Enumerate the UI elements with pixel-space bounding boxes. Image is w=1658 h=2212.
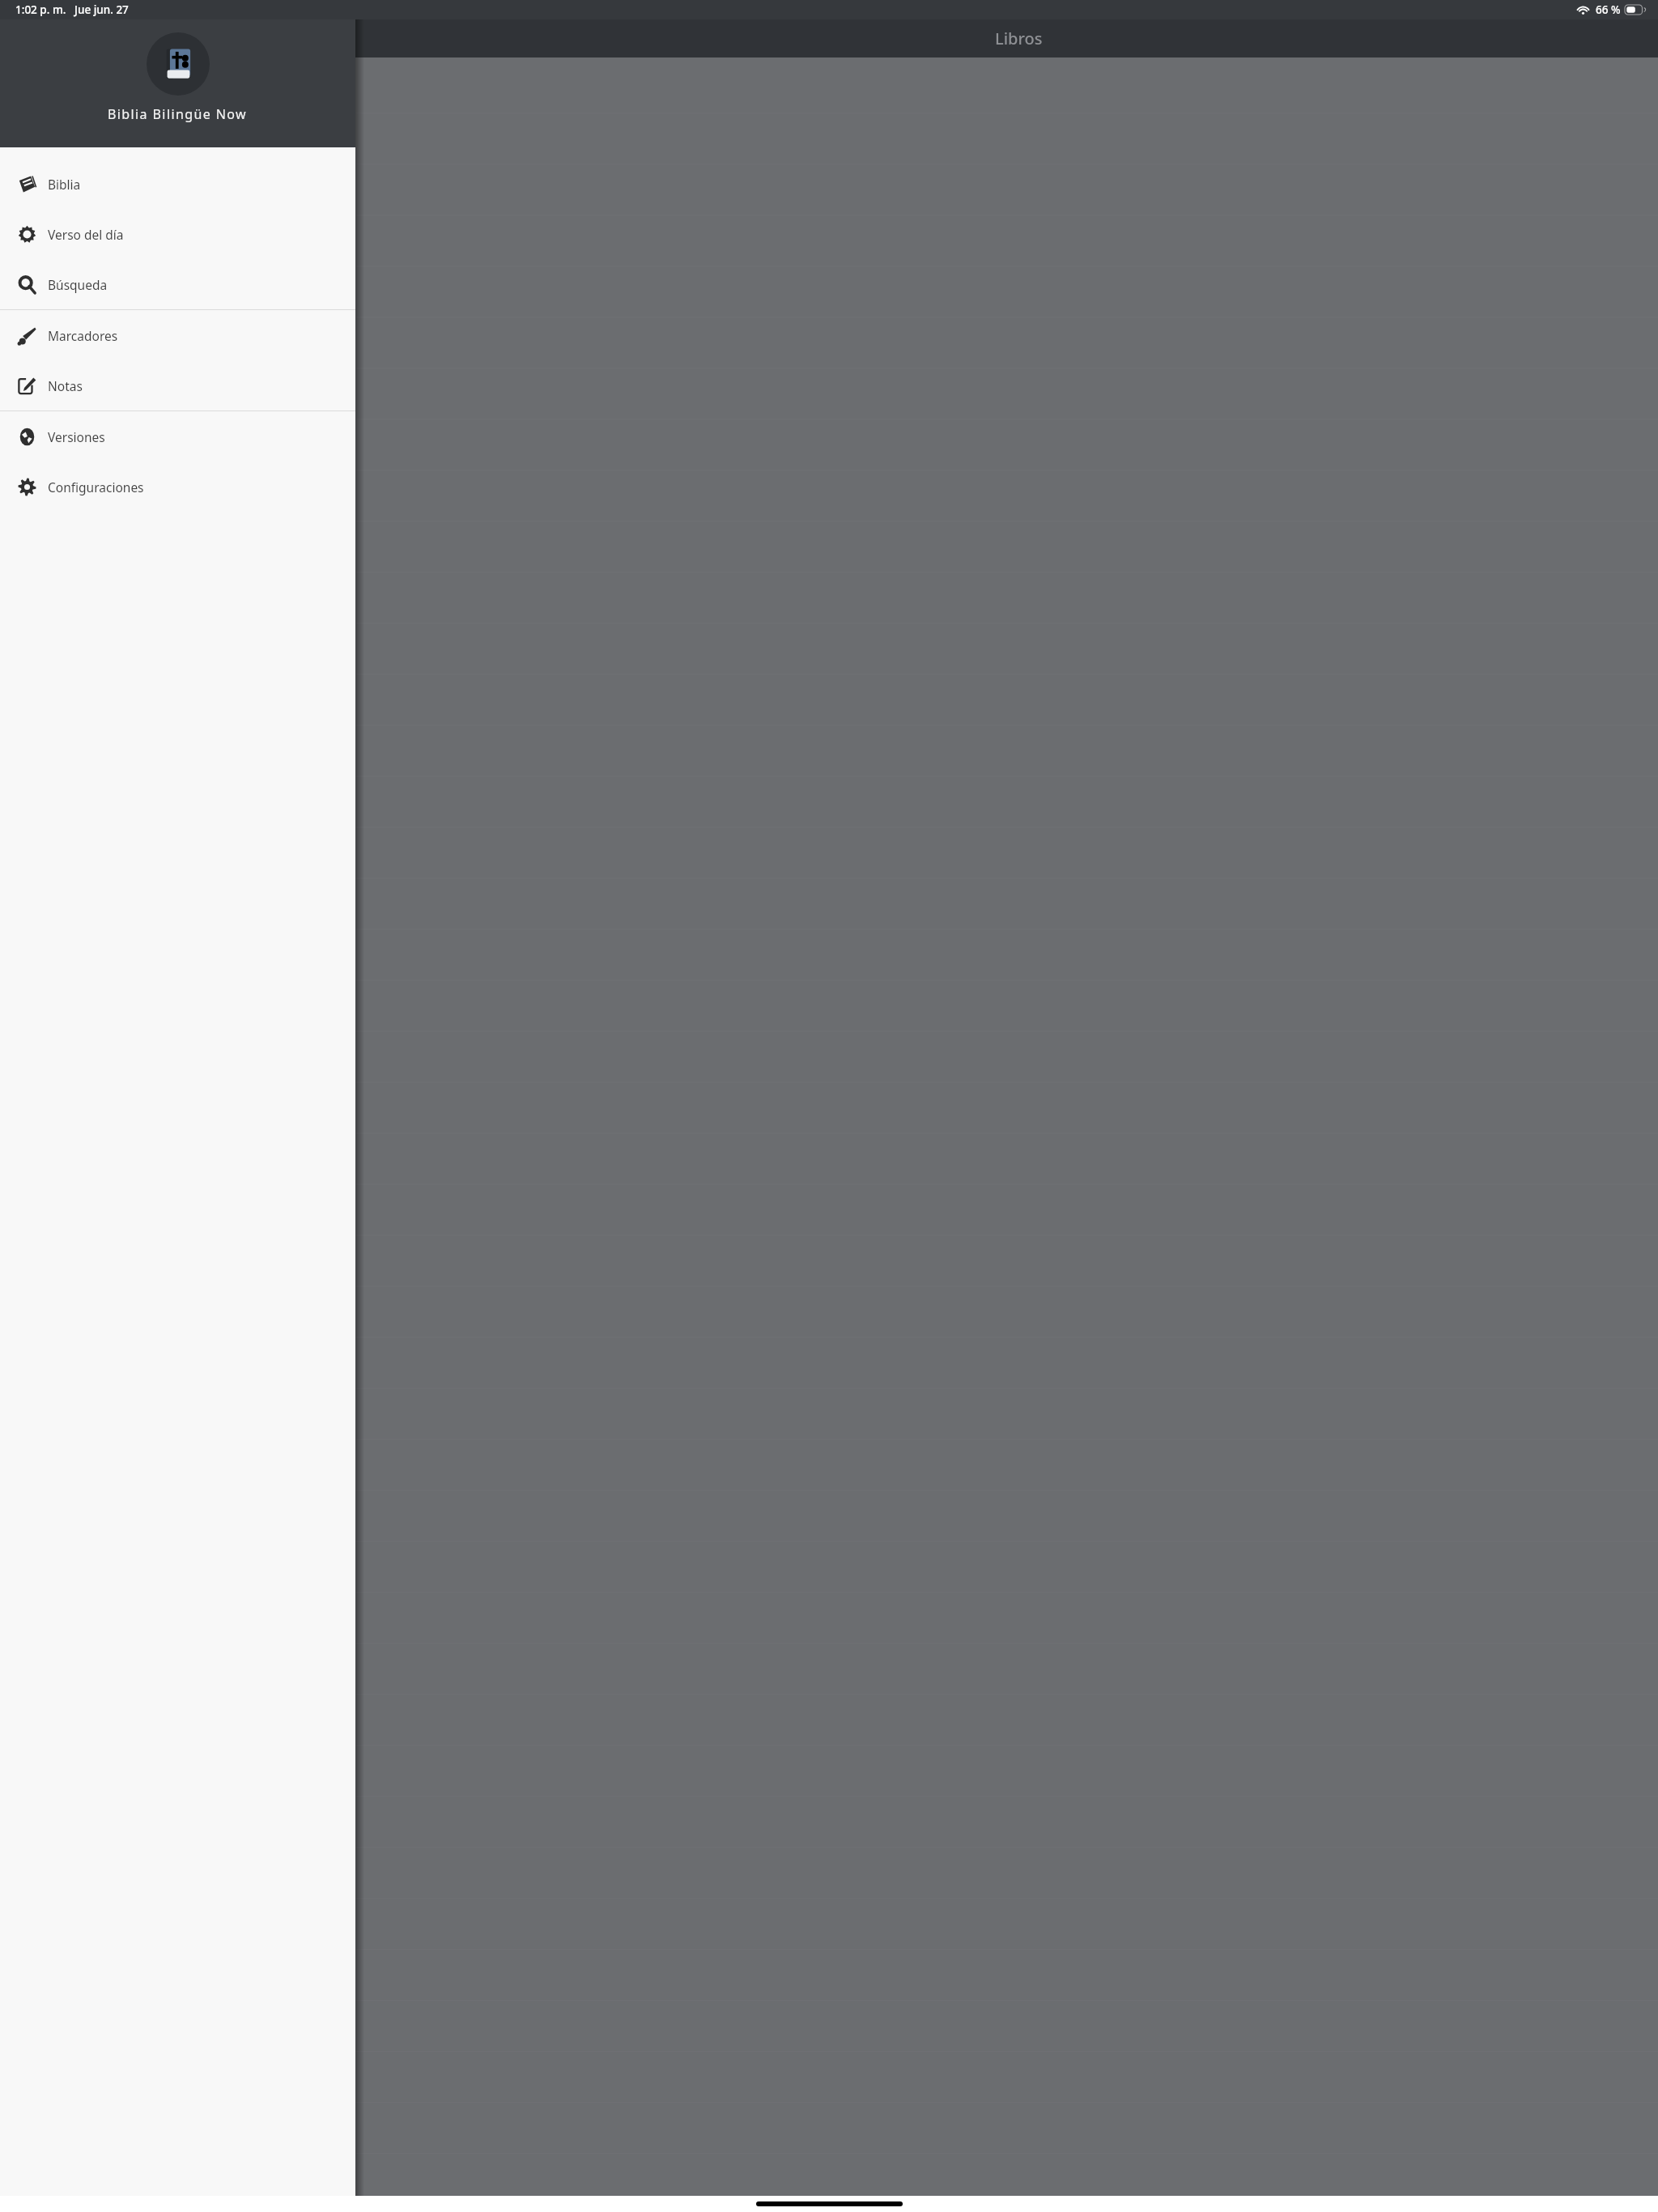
button[interactable]: Marcadores [0, 310, 355, 360]
button[interactable]: Biblia [0, 159, 355, 209]
button[interactable]: Verso del día [0, 209, 355, 259]
button[interactable]: Versiones [0, 411, 355, 462]
staticText: Configuraciones [48, 479, 144, 496]
button[interactable]: Notas [0, 360, 355, 410]
staticText: 66 % [1596, 2, 1621, 17]
staticText: Libros [995, 28, 1043, 49]
staticText: Verso del día [48, 226, 124, 243]
staticText: Biblia Bilingüe Now [108, 105, 248, 123]
staticText: Versiones [48, 428, 105, 445]
staticText: Búsqueda [48, 276, 108, 293]
staticText: Jue jun. 27 [74, 2, 129, 17]
staticText: 1:02 p. m. [15, 2, 66, 17]
button[interactable]: Búsqueda [0, 259, 355, 309]
staticText: Biblia [48, 176, 81, 193]
button[interactable]: Configuraciones [0, 462, 355, 512]
staticText: Notas [48, 377, 83, 394]
staticText: Marcadores [48, 327, 118, 344]
